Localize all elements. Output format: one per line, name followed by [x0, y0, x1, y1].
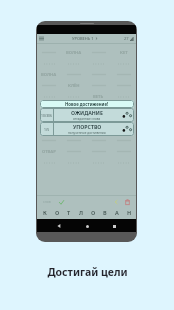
button[interactable]: А: [111, 206, 123, 219]
staticText: Л: [79, 209, 84, 216]
button[interactable]: ВОЛНА: [61, 47, 86, 58]
staticText: ВОЛНА: [66, 50, 82, 56]
staticText: ОЖИДАНИЕ: [71, 109, 103, 116]
button[interactable]: Н: [123, 206, 135, 219]
button[interactable]: Menu: [37, 34, 46, 43]
button[interactable]: Delete: [122, 197, 132, 207]
staticText: слов: [43, 199, 51, 204]
button[interactable]: [61, 91, 86, 102]
staticText: 1/5: [44, 127, 50, 132]
button[interactable]: [37, 113, 61, 124]
button[interactable]: В: [99, 206, 111, 219]
button[interactable]: [61, 113, 86, 124]
button[interactable]: [111, 135, 136, 146]
button[interactable]: 1/5: [40, 122, 134, 136]
button[interactable]: Home: [81, 220, 93, 232]
button[interactable]: [37, 102, 61, 113]
staticText: Н: [127, 209, 132, 216]
button[interactable]: Undo: [112, 198, 120, 206]
button[interactable]: [86, 113, 111, 124]
button[interactable]: Back: [53, 220, 65, 232]
button[interactable]: Recents: [108, 220, 120, 232]
button[interactable]: [111, 124, 136, 135]
staticText: О: [55, 209, 60, 216]
button[interactable]: [61, 135, 86, 146]
staticText: 27: [124, 36, 129, 41]
button[interactable]: УРОВЕНЬ 1: [72, 36, 98, 41]
button[interactable]: Т: [63, 206, 75, 219]
staticText: УПОРСТВО: [73, 123, 102, 130]
staticText: В: [103, 209, 107, 216]
staticText: 10/306: [41, 113, 52, 118]
staticText: КЛЁН: [68, 83, 80, 89]
button[interactable]: [111, 102, 136, 113]
button[interactable]: Confirm: [57, 198, 65, 206]
button[interactable]: К: [38, 206, 51, 219]
staticText: отгаданные слова: [73, 117, 101, 121]
button[interactable]: О: [51, 206, 63, 219]
button[interactable]: 10/306: [40, 108, 134, 122]
button[interactable]: [37, 124, 61, 135]
button[interactable]: [61, 102, 86, 113]
staticText: ОТВАР: [42, 149, 56, 155]
staticText: ВОЛНА: [41, 72, 57, 78]
staticText: ВЕТЬ: [93, 94, 104, 100]
button[interactable]: [111, 113, 136, 124]
button[interactable]: О: [87, 206, 99, 219]
staticText: полученные достижения: [68, 131, 106, 135]
button[interactable]: ВЕТЬ: [86, 91, 111, 102]
staticText: К: [43, 209, 47, 216]
staticText: УРОВЕНЬ 1: [72, 36, 94, 41]
staticText: А: [115, 209, 119, 216]
button[interactable]: Л: [75, 206, 87, 219]
button[interactable]: ВОЛНА: [37, 69, 61, 80]
staticText: КЕТ: [120, 50, 128, 56]
button[interactable]: [86, 124, 111, 135]
staticText: Т: [67, 209, 71, 216]
staticText: О: [91, 209, 96, 216]
button[interactable]: КЕТ: [111, 47, 136, 58]
button[interactable]: [37, 135, 61, 146]
button[interactable]: [37, 91, 61, 102]
button[interactable]: [61, 124, 86, 135]
button[interactable]: [111, 91, 136, 102]
staticText: Новое достижение!: [65, 101, 109, 107]
button[interactable]: [86, 102, 111, 113]
button[interactable]: КЛЁН: [61, 80, 86, 91]
button[interactable]: ОТВАР: [37, 146, 61, 157]
staticText: Достигай цели: [47, 265, 128, 279]
button[interactable]: [86, 135, 111, 146]
